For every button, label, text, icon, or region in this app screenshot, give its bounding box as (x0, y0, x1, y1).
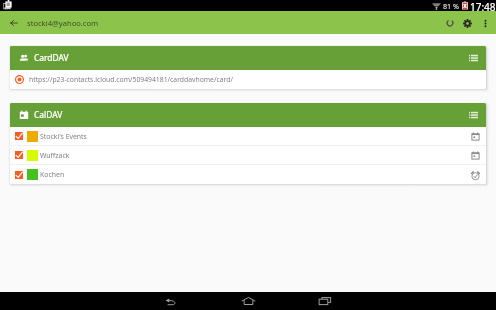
staticText: 17:48 (470, 0, 496, 11)
button[interactable]: Stocki's Events (10, 127, 486, 145)
button[interactable]: Alarm (466, 166, 484, 184)
staticText: 81 % (443, 1, 460, 11)
staticText: stocki4@yahoo.com (27, 18, 99, 28)
button[interactable]: Sync (440, 13, 460, 33)
button[interactable]: Calendar (466, 127, 484, 145)
button[interactable]: Home (239, 292, 257, 310)
button[interactable]: More options (477, 15, 493, 31)
button[interactable]: Options (463, 48, 483, 68)
button[interactable]: Kochen (10, 165, 486, 184)
staticText: CalDAV (34, 109, 63, 120)
button[interactable]: CalDAV (10, 103, 486, 127)
button[interactable]: CardDAV (10, 46, 486, 70)
button[interactable]: Wuffzack (10, 146, 486, 164)
button[interactable]: Options (463, 105, 483, 125)
button[interactable]: Back (3, 12, 25, 34)
button[interactable]: Back (161, 292, 179, 310)
button[interactable]: Calendar (466, 146, 484, 164)
staticText: CardDAV (34, 52, 69, 63)
staticText: https://p23-contacts.icloud.com/50949418… (29, 75, 233, 84)
staticText: Wuffzack (40, 151, 70, 160)
staticText: Stocki's Events (40, 132, 87, 141)
button[interactable]: Recents (316, 292, 334, 310)
button[interactable]: https://p23-contacts.icloud.com/50949418… (10, 70, 486, 89)
staticText: Kochen (40, 170, 65, 179)
button[interactable]: Settings (458, 14, 476, 32)
